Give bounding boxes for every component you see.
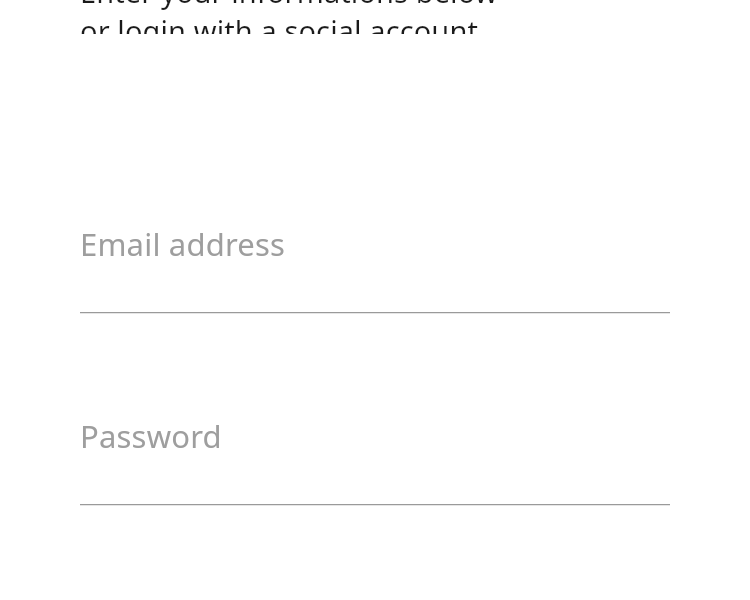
button[interactable]: Enter your informations below or login w… bbox=[80, 0, 670, 34]
staticText: Email address bbox=[80, 223, 286, 265]
staticText: Enter your informations below or login w… bbox=[80, 0, 498, 34]
staticText: Password bbox=[80, 415, 222, 457]
button[interactable]: Password bbox=[80, 415, 670, 506]
button[interactable]: Email address bbox=[80, 223, 670, 314]
